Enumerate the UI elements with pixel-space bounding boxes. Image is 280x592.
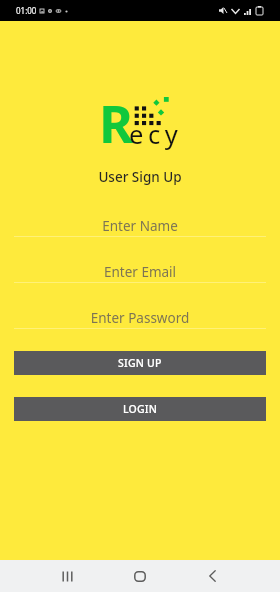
staticText: LOGIN [123,402,158,416]
button[interactable]: Home [116,560,164,592]
staticText: ecy [129,117,183,152]
staticText: 01:00 [16,5,37,16]
staticText: User Sign Up [0,168,280,186]
staticText: Enter Name [0,217,280,235]
staticText: Enter Email [0,263,280,281]
button[interactable]: Recent apps [43,560,91,592]
button[interactable]: SIGN UP [14,351,266,375]
staticText: R [99,87,134,158]
button[interactable]: Back [188,560,236,592]
button[interactable]: LOGIN [14,397,266,421]
staticText: Enter Password [0,309,280,327]
staticText: SIGN UP [118,356,162,370]
